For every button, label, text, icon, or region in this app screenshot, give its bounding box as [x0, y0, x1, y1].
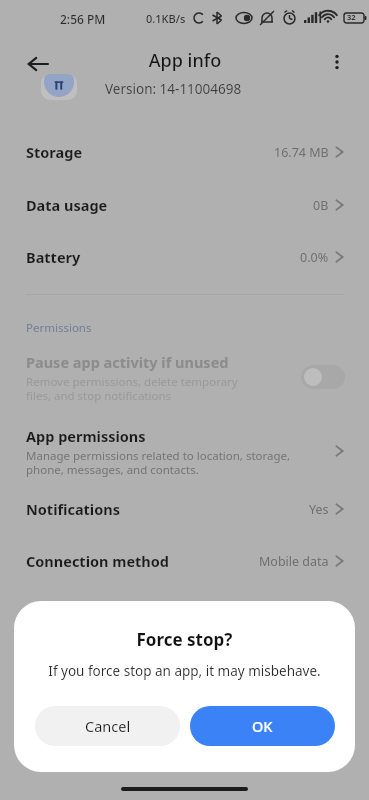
- staticText: Data usage: [26, 195, 313, 215]
- button[interactable]: App permissions: [0, 420, 369, 482]
- staticText: Version: 14-11004698: [105, 80, 242, 98]
- button[interactable]: Battery: [0, 235, 369, 279]
- staticText: Force stop?: [14, 628, 355, 651]
- staticText: 16.74 MB: [274, 144, 329, 161]
- staticText: Yes: [309, 501, 329, 518]
- button[interactable]: OK: [190, 706, 335, 746]
- staticText: Pause app activity if unused: [26, 352, 229, 372]
- button[interactable]: Storage: [0, 130, 369, 174]
- button[interactable]: Data usage: [0, 183, 369, 227]
- button[interactable]: Pause app activity if unused: [0, 348, 369, 406]
- staticText: App permissions: [26, 426, 146, 446]
- staticText: 32: [347, 12, 356, 22]
- staticText: Storage: [26, 142, 274, 162]
- staticText: Connection method: [26, 551, 259, 571]
- button[interactable]: Back: [14, 40, 62, 88]
- staticText: 2:56 PM: [60, 11, 106, 27]
- staticText: If you force stop an app, it may misbeha…: [14, 662, 355, 680]
- button[interactable]: More options: [315, 40, 359, 84]
- staticText: Manage permissions related to location, …: [26, 448, 291, 477]
- button[interactable]: Pause app activity toggle: [301, 365, 345, 389]
- button[interactable]: Connection method: [0, 539, 369, 583]
- staticText: Permissions: [26, 320, 92, 336]
- staticText: 0B: [313, 197, 329, 214]
- button[interactable]: Cancel: [35, 706, 180, 746]
- staticText: Cancel: [85, 716, 131, 736]
- staticText: Remove permissions, delete temporary fil…: [26, 374, 238, 403]
- staticText: 0.0%: [300, 249, 329, 266]
- staticText: Notifications: [26, 499, 309, 519]
- button[interactable]: Notifications: [0, 487, 369, 531]
- staticText: Mobile data: [259, 553, 329, 570]
- staticText: 0.1KB/s: [146, 11, 186, 26]
- staticText: Battery: [26, 247, 300, 267]
- staticText: OK: [252, 716, 273, 736]
- staticText: App info: [85, 48, 285, 73]
